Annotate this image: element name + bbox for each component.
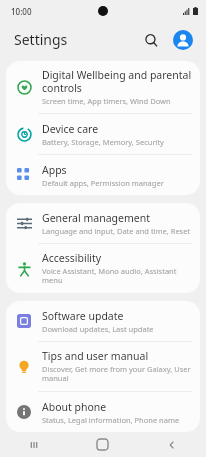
button[interactable]: Back <box>137 432 206 457</box>
button[interactable]: Device care <box>6 114 200 154</box>
staticText: Default apps, Permission manager <box>42 178 164 188</box>
staticText: Accessibility <box>42 251 102 265</box>
staticText: Settings <box>14 30 68 49</box>
button[interactable]: Software update <box>6 301 200 341</box>
staticText: About phone <box>42 400 107 414</box>
staticText: Voice Assistant, Mono audio, Assistant m… <box>42 266 192 286</box>
button[interactable]: Recents <box>0 432 68 457</box>
button[interactable]: Account <box>170 27 196 53</box>
staticText: Tips and user manual <box>42 349 149 363</box>
staticText: Digital Wellbeing and parental controls <box>42 68 192 95</box>
staticText: Status, Legal information, Phone name <box>42 415 180 425</box>
staticText: General management <box>42 211 150 225</box>
staticText: Battery, Storage, Memory, Security <box>42 137 164 147</box>
button[interactable]: Digital Wellbeing and parental controls <box>6 61 200 113</box>
staticText: Screen time, App timers, Wind Down <box>42 96 171 106</box>
staticText: Device care <box>42 122 99 136</box>
staticText: Download updates, Last update <box>42 324 154 334</box>
button[interactable]: General management <box>6 203 200 243</box>
button[interactable]: Search <box>138 27 164 53</box>
button[interactable]: Tips and user manual <box>6 342 200 391</box>
staticText: Language and input, Date and time, Reset <box>42 226 191 236</box>
button[interactable]: Accessibility <box>6 244 200 293</box>
staticText: Apps <box>42 163 67 177</box>
staticText: Discover, Get more from your Galaxy, Use… <box>42 364 192 384</box>
button[interactable]: Home <box>68 432 137 457</box>
button[interactable]: About phone <box>6 392 200 432</box>
button[interactable]: Apps <box>6 155 200 195</box>
staticText: 10:00 <box>11 6 32 17</box>
staticText: Software update <box>42 309 124 323</box>
